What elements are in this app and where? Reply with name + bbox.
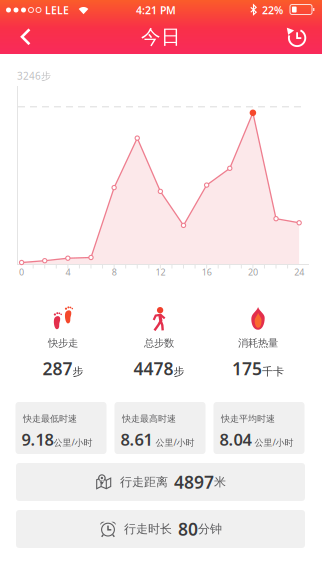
staticText: 公里/小时 [251,436,293,448]
button[interactable]: 快走平均时速 [214,402,305,454]
staticText: 8 [112,266,117,278]
staticText: 22% [262,3,283,17]
staticText: 米 [214,474,226,489]
staticText: 12 [155,266,165,278]
staticText: 175 [232,357,262,380]
staticText: 4897 [174,470,214,494]
staticText: 步 [72,365,83,379]
staticText: 8.61 [120,428,152,450]
staticText: 8.04 [219,428,251,450]
staticText: LELE [45,3,69,17]
staticText: 消耗热量 [238,337,278,350]
staticText: 4:21 PM [136,3,176,17]
staticText: 快走最高时速 [122,413,176,424]
staticText: 3246步 [17,69,51,83]
button[interactable]: History [276,20,318,54]
button[interactable]: 行走时长 [16,510,305,548]
staticText: 总步数 [144,337,174,350]
staticText: 行走时长 [124,521,172,536]
staticText: 20 [248,266,258,278]
staticText: 快步走 [48,337,78,350]
staticText: 80 [178,517,198,541]
button[interactable]: 快走最高时速 [115,402,206,454]
staticText: 行走距离 [120,474,168,489]
staticText: 快走平均时速 [221,413,275,424]
button[interactable]: Back [5,20,47,54]
staticText: 快走最低时速 [23,413,77,424]
staticText: 4478 [133,357,173,380]
button[interactable]: 行走距离 [16,463,305,501]
staticText: 9.18 [21,428,53,450]
staticText: 今日 [141,25,181,49]
button[interactable]: 快走最低时速 [16,402,107,454]
staticText: 287 [42,357,72,380]
staticText: 公里/小时 [53,436,92,448]
staticText: 步 [173,365,184,379]
staticText: 分钟 [198,521,222,536]
staticText: 24 [294,266,304,278]
staticText: 公里/小时 [152,436,194,448]
staticText: 4 [65,266,70,278]
staticText: 0 [19,266,24,278]
staticText: 千卡 [262,365,284,379]
staticText: 16 [202,266,212,278]
